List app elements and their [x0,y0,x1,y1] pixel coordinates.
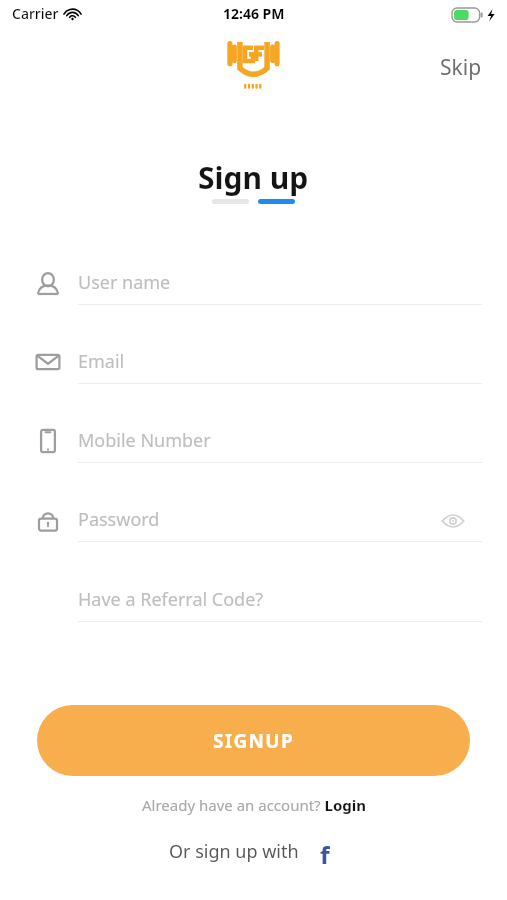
staticText: Skip [440,53,482,82]
staticText: Already have an account? Login [142,795,366,815]
staticText: Or sign up with [169,839,299,864]
staticText: Carrier [12,4,59,23]
staticText: SIGNUP [213,728,295,754]
staticText: Mobile Number [78,428,211,453]
button[interactable]: SIGNUP [37,705,470,776]
staticText: f [320,838,330,864]
staticText: Sign up [198,157,309,198]
staticText: User name [78,270,171,295]
button[interactable]: Sign up with Facebook [312,838,338,864]
button[interactable]: Email [30,343,482,389]
staticText: Email [78,349,125,374]
button[interactable]: Mobile Number [30,422,482,468]
staticText: Have a Referral Code? [78,587,264,612]
button[interactable]: User name [30,264,482,310]
staticText: Password [78,507,160,532]
button[interactable]: Already have an account? Login [134,791,374,819]
staticText: 12:46 PM [223,4,285,23]
button[interactable]: Skip [430,48,492,87]
button[interactable]: Show password [438,506,468,536]
button[interactable]: Have a Referral Code? [30,581,482,627]
button[interactable]: Password [30,501,482,547]
